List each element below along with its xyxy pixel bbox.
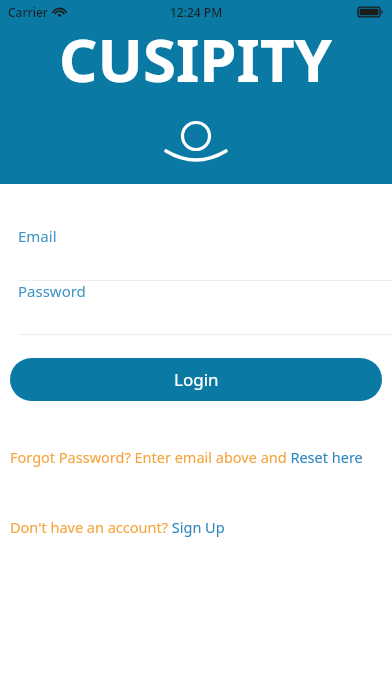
staticText: Carrier (8, 4, 48, 20)
staticText: Login (174, 368, 219, 391)
button[interactable]: Don't have an account? Sign Up (0, 511, 392, 543)
staticText: Email (18, 226, 57, 246)
button[interactable]: Login (10, 358, 382, 401)
staticText: Forgot Password? Enter email above and R… (10, 447, 363, 467)
button[interactable]: Password (0, 281, 392, 335)
other: Cusipity logo (160, 120, 232, 170)
button[interactable]: Forgot Password? Enter email above and R… (0, 441, 392, 473)
staticText: 12:24 PM (170, 4, 223, 20)
staticText: Password (18, 281, 86, 301)
staticText: Don't have an account? Sign Up (10, 517, 225, 537)
staticText: CUSIPITY (59, 18, 333, 100)
button[interactable]: Email (0, 226, 392, 281)
